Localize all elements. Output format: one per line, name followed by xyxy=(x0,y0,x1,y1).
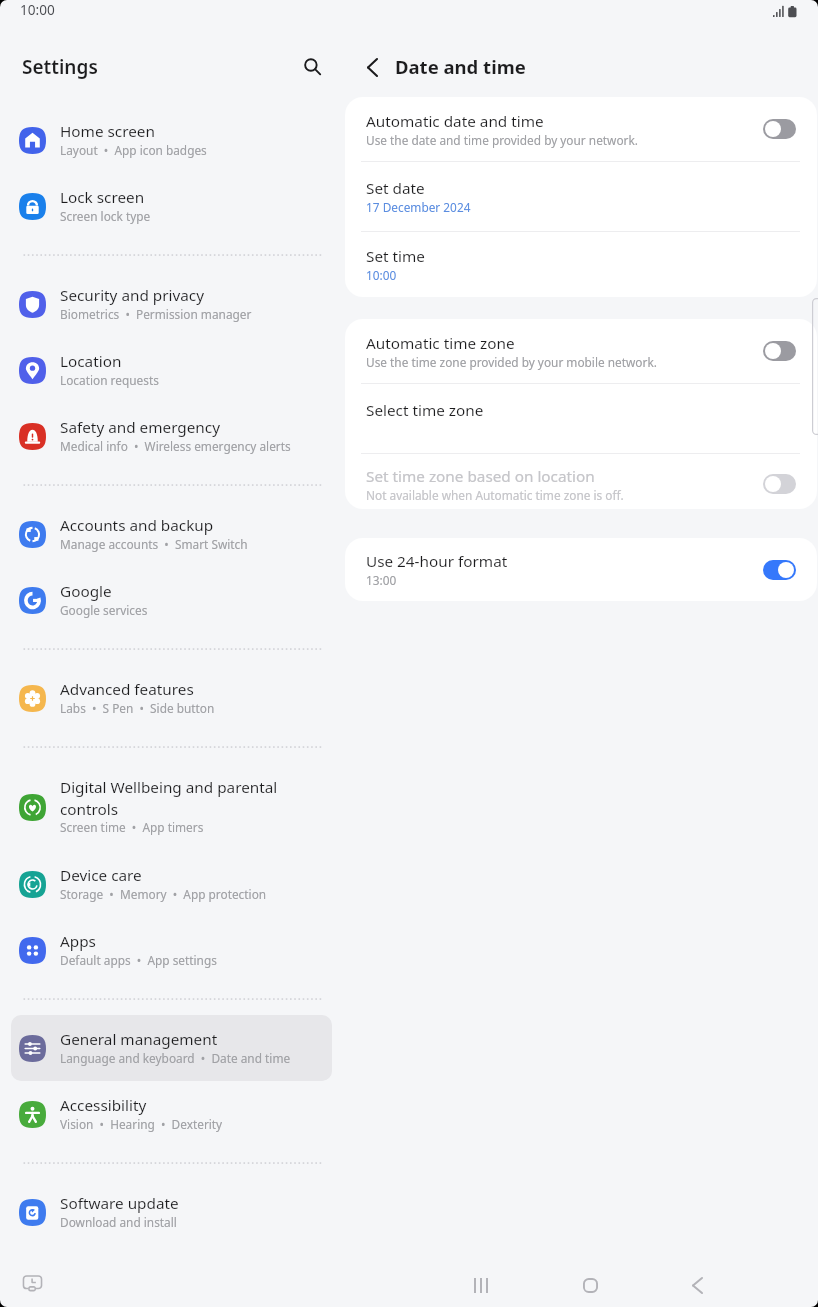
staticText: General management xyxy=(60,1029,218,1050)
button[interactable]: Toggle xyxy=(763,119,796,139)
staticText: Advanced features xyxy=(60,679,194,700)
button[interactable]: Digital Wellbeing and parental controls xyxy=(11,763,332,851)
staticText: Select time zone xyxy=(366,400,484,421)
button[interactable]: Safety and emergency xyxy=(11,403,332,469)
button[interactable]: Screen timeout xyxy=(18,1269,46,1297)
staticText: Download and install xyxy=(60,1214,177,1230)
button[interactable]: Back xyxy=(669,1257,725,1307)
staticText: Use the time zone provided by your mobil… xyxy=(366,354,657,370)
staticText: Accessibility xyxy=(60,1095,147,1116)
staticText: Apps xyxy=(60,931,96,952)
staticText: Use the date and time provided by your n… xyxy=(366,132,638,148)
button[interactable]: Google xyxy=(11,567,332,633)
button[interactable]: Advanced features xyxy=(11,665,332,731)
staticText: Lock screen xyxy=(60,187,145,208)
button[interactable]: Recents xyxy=(453,1257,509,1307)
staticText: Labs • S Pen • Side button xyxy=(60,700,215,716)
staticText: Home screen xyxy=(60,121,155,142)
staticText: Location xyxy=(60,351,122,372)
staticText: Set time zone based on location xyxy=(366,466,595,487)
staticText: Digital Wellbeing and parental controls xyxy=(60,777,278,819)
staticText: Screen lock type xyxy=(60,208,151,224)
button[interactable]: Security and privacy xyxy=(11,271,332,337)
button[interactable]: Home xyxy=(562,1257,618,1307)
button[interactable]: Home screen xyxy=(11,107,332,173)
staticText: Date and time xyxy=(395,54,526,79)
staticText: Not available when Automatic time zone i… xyxy=(366,487,624,503)
staticText: Device care xyxy=(60,865,142,886)
staticText: Screen time • App timers xyxy=(60,819,204,835)
staticText: Language and keyboard • Date and time xyxy=(60,1050,291,1066)
button[interactable]: Automatic time zone xyxy=(345,319,817,383)
staticText: Software update xyxy=(60,1193,179,1214)
staticText: Google services xyxy=(60,602,148,618)
button[interactable]: Search xyxy=(290,45,334,89)
staticText: 10:00 xyxy=(20,0,55,19)
button[interactable]: Software update xyxy=(11,1179,332,1245)
staticText: Storage • Memory • App protection xyxy=(60,886,267,902)
button[interactable]: Select time zone xyxy=(345,384,817,453)
staticText: 13:00 xyxy=(366,572,397,588)
button[interactable]: Toggle xyxy=(763,560,796,580)
staticText: Location requests xyxy=(60,372,159,388)
button[interactable]: General management xyxy=(11,1015,332,1081)
staticText: Accounts and backup xyxy=(60,515,214,536)
button[interactable]: Location xyxy=(11,337,332,403)
staticText: Manage accounts • Smart Switch xyxy=(60,536,248,552)
staticText: Use 24-hour format xyxy=(366,551,508,572)
staticText: Security and privacy xyxy=(60,285,204,306)
staticText: Google xyxy=(60,581,112,602)
staticText: 10:00 xyxy=(366,267,397,283)
button[interactable]: Set time zone based on location xyxy=(345,459,817,509)
button[interactable]: Accessibility xyxy=(11,1081,332,1147)
button[interactable]: Lock screen xyxy=(11,173,332,239)
staticText: Vision • Hearing • Dexterity xyxy=(60,1116,223,1132)
button[interactable]: Use 24-hour format xyxy=(345,538,817,601)
staticText: Layout • App icon badges xyxy=(60,142,207,158)
staticText: Default apps • App settings xyxy=(60,952,217,968)
button[interactable]: Device care xyxy=(11,851,332,917)
button[interactable]: Automatic date and time xyxy=(345,97,817,161)
staticText: Automatic time zone xyxy=(366,333,515,354)
button[interactable]: Apps xyxy=(11,917,332,983)
button[interactable]: Accounts and backup xyxy=(11,501,332,567)
button[interactable]: Toggle xyxy=(763,341,796,361)
button[interactable]: Back xyxy=(350,45,394,89)
staticText: Automatic date and time xyxy=(366,111,544,132)
staticText: Settings xyxy=(22,54,98,80)
button[interactable]: Toggle xyxy=(763,474,796,494)
staticText: Safety and emergency xyxy=(60,417,220,438)
staticText: Biometrics • Permission manager xyxy=(60,306,252,322)
staticText: 17 December 2024 xyxy=(366,199,471,215)
staticText: Set date xyxy=(366,178,425,199)
button[interactable]: Set date xyxy=(345,162,817,231)
staticText: Set time xyxy=(366,246,425,267)
button[interactable]: Set time xyxy=(345,232,817,297)
staticText: Medical info • Wireless emergency alerts xyxy=(60,438,291,454)
